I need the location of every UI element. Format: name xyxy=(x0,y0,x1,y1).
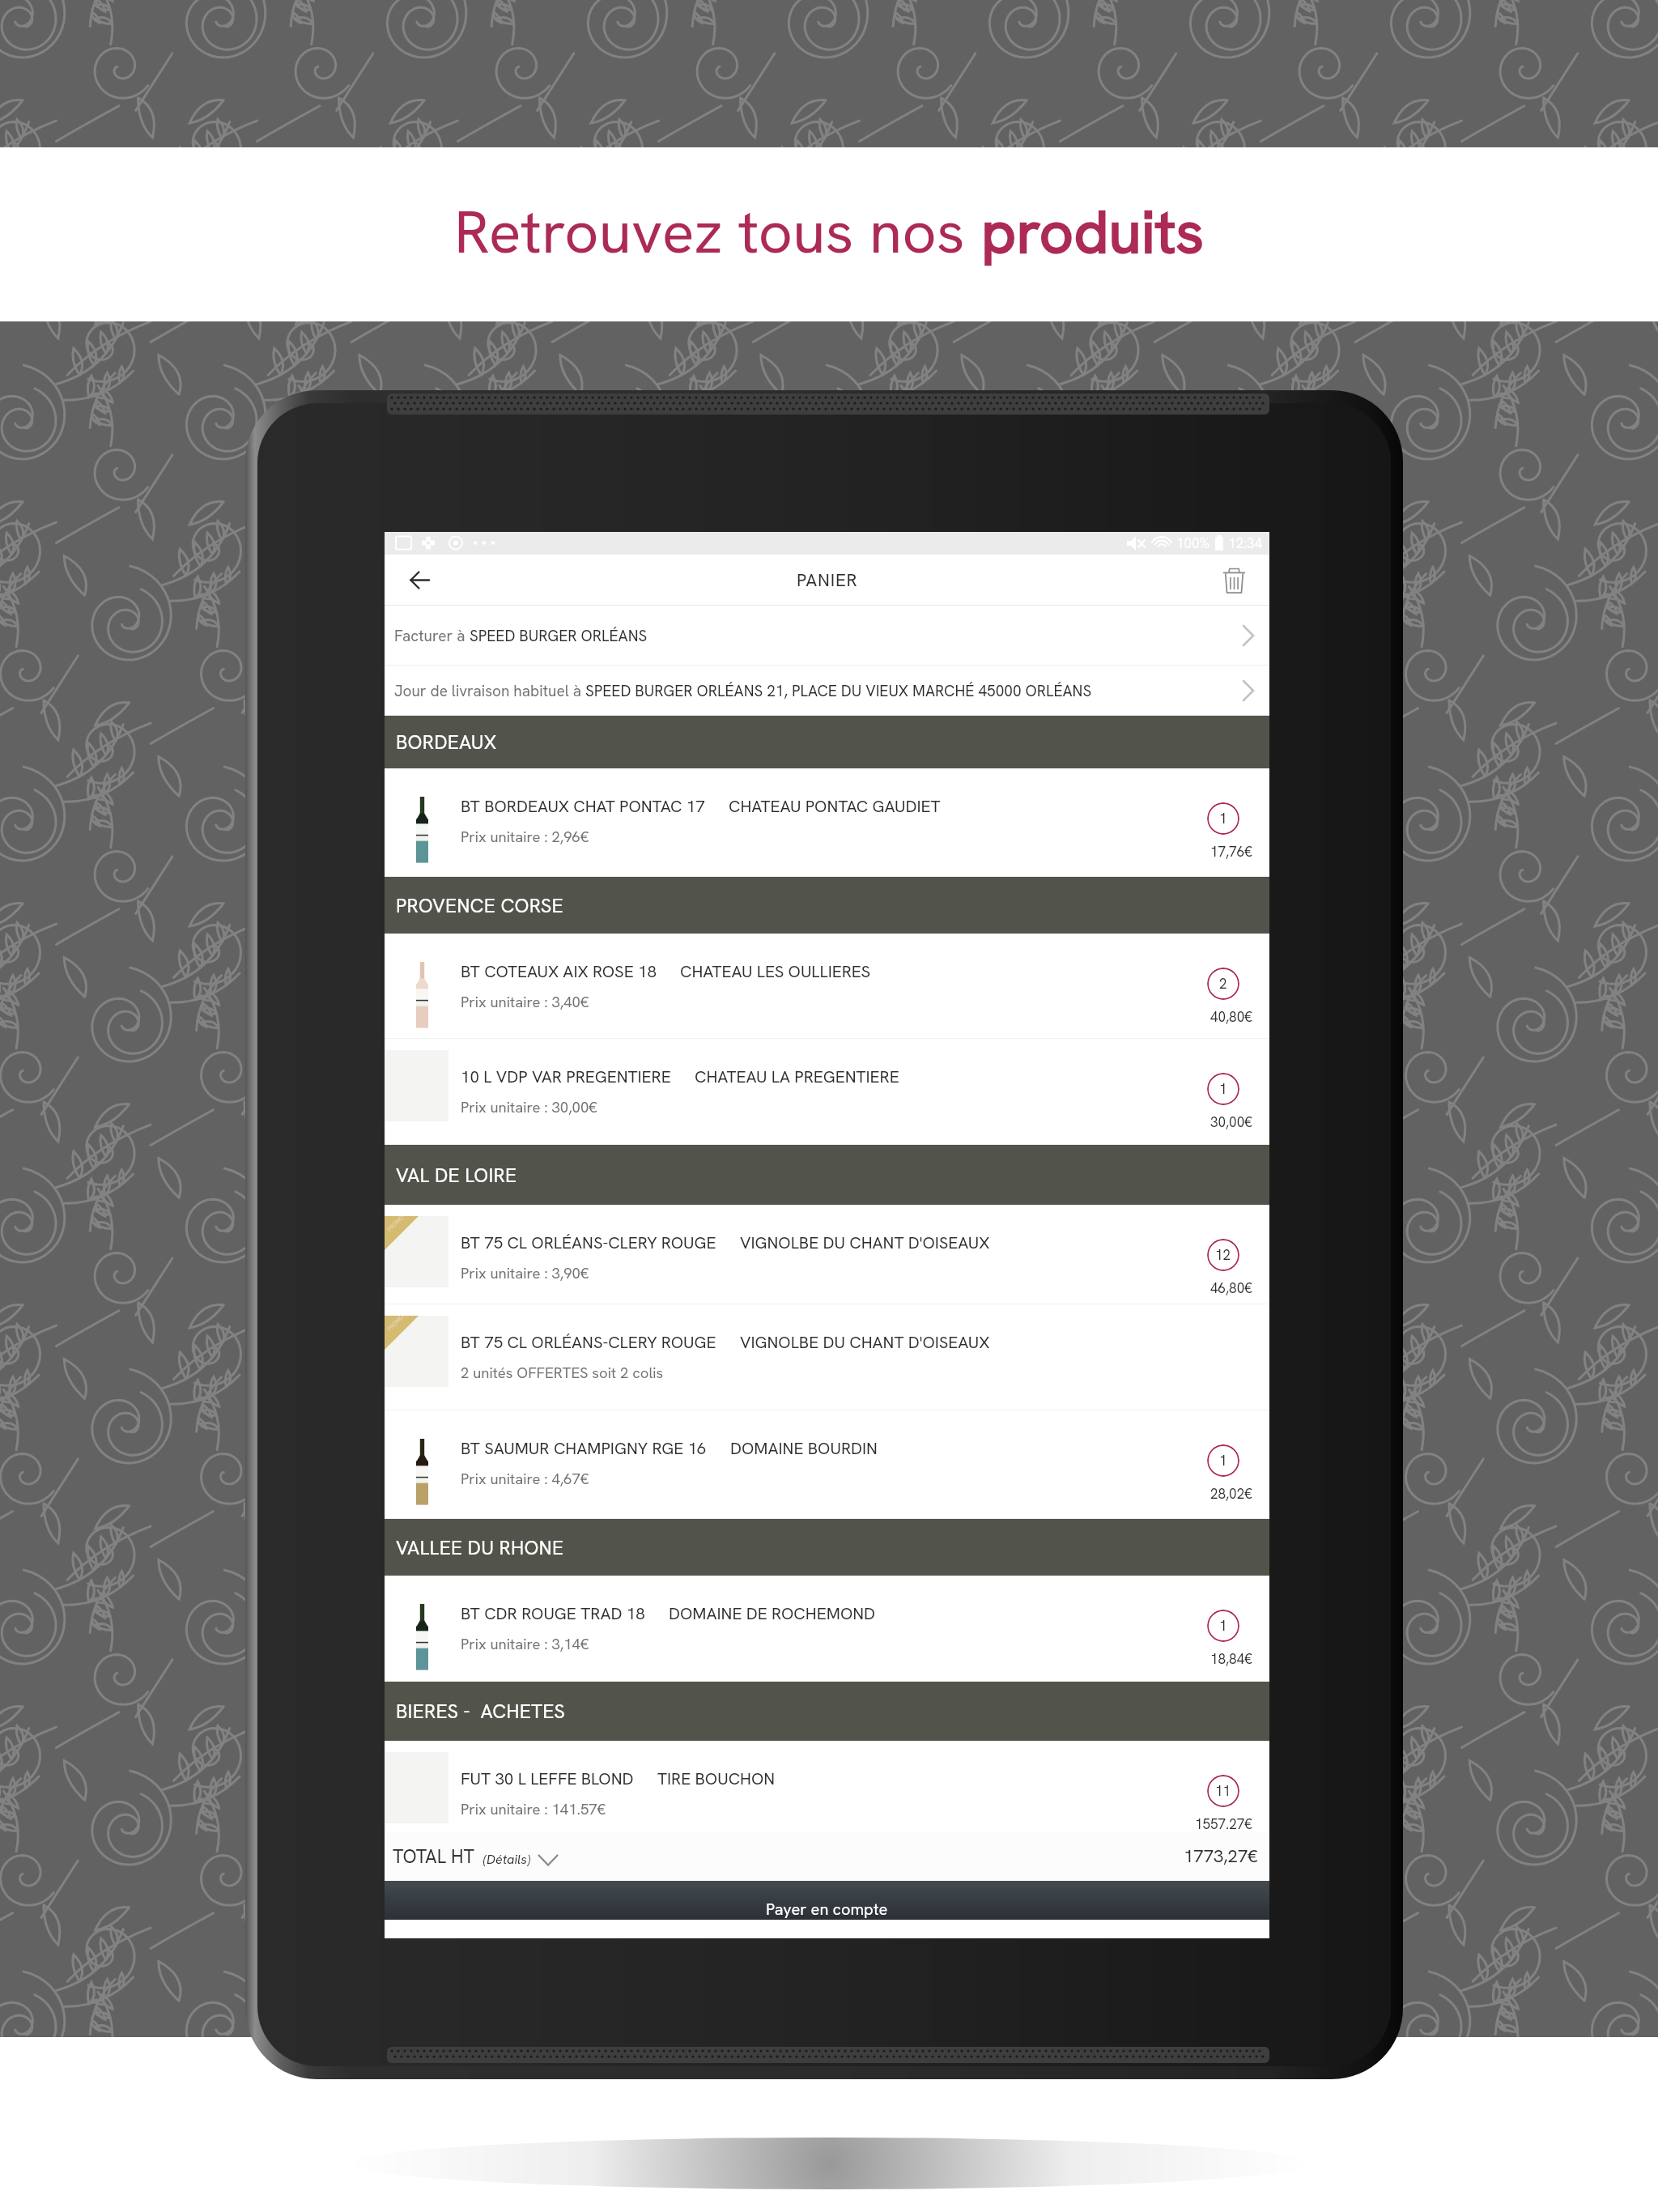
button[interactable]: PROMO xyxy=(385,1304,1269,1410)
staticText: Prix unitaire : 3,90€ xyxy=(461,1263,589,1283)
staticText: 12 xyxy=(1215,1246,1231,1264)
staticText: DOMAINE BOURDIN xyxy=(730,1437,878,1459)
staticText: BT SAUMUR CHAMPIGNY RGE 16 xyxy=(461,1437,707,1459)
staticText: 1 xyxy=(1219,1080,1227,1098)
staticText: Jour de livraison habituel à xyxy=(394,681,585,701)
staticText: 1773,27€ xyxy=(1184,1844,1258,1868)
staticText: BIERES - ACHETES xyxy=(396,1699,566,1724)
staticText: BT COTEAUX AIX ROSE 18 xyxy=(461,960,657,982)
button[interactable]: Vider le panier xyxy=(1209,555,1258,606)
staticText: 1 xyxy=(1219,1617,1227,1635)
button[interactable]: BT SAUMUR CHAMPIGNY RGE 16 xyxy=(385,1410,1269,1519)
button[interactable]: 11 xyxy=(1207,1775,1239,1807)
staticText: 18,84€ xyxy=(1210,1650,1252,1668)
button[interactable]: 12 xyxy=(1207,1239,1239,1271)
staticText: CHATEAU LES OULLIERES xyxy=(680,960,871,982)
button[interactable]: BT BORDEAUX CHAT PONTAC 17 xyxy=(385,768,1269,877)
staticText: CHATEAU LA PREGENTIERE xyxy=(695,1066,899,1087)
staticText: Payer en compte xyxy=(766,1899,888,1920)
button[interactable]: BT COTEAUX AIX ROSE 18 xyxy=(385,934,1269,1039)
staticText: 40,80€ xyxy=(1210,1008,1252,1026)
staticText: 1557.27€ xyxy=(1195,1815,1252,1833)
staticText: produits xyxy=(981,193,1205,270)
staticText: 2 unités OFFERTES soit 2 colis xyxy=(461,1363,664,1382)
button[interactable]: FUT 30 L LEFFE BLOND xyxy=(385,1741,1269,1850)
staticText: SPEED BURGER ORLÉANS 21, PLACE DU VIEUX … xyxy=(585,681,1092,701)
button[interactable]: BT CDR ROUGE TRAD 18 xyxy=(385,1576,1269,1682)
button[interactable]: Retour xyxy=(389,555,450,606)
staticText: Prix unitaire : 30,00€ xyxy=(461,1097,597,1117)
staticText: PROVENCE CORSE xyxy=(396,893,563,918)
staticText: 1 xyxy=(1219,810,1227,827)
staticText: Prix unitaire : 141.57€ xyxy=(461,1799,606,1819)
staticText: 12:34 xyxy=(1228,534,1263,552)
staticText: Prix unitaire : 2,96€ xyxy=(461,827,589,846)
button[interactable]: 1 xyxy=(1207,1073,1239,1105)
button[interactable]: 1 xyxy=(1207,802,1239,835)
staticText: Prix unitaire : 3,40€ xyxy=(461,992,589,1011)
button[interactable]: TOTAL HT xyxy=(385,1831,1269,1881)
staticText: BT 75 CL ORLÉANS-CLERY ROUGE xyxy=(461,1231,716,1253)
staticText: TIRE BOUCHON xyxy=(657,1767,776,1789)
button[interactable]: 2 xyxy=(1207,968,1239,1000)
button[interactable]: Jour de livraison habituel à xyxy=(385,666,1269,716)
staticText: Facturer à xyxy=(394,626,470,646)
staticText: PROMO xyxy=(386,1213,405,1233)
button[interactable]: 1 xyxy=(1207,1444,1239,1477)
button[interactable]: 1 xyxy=(1207,1610,1239,1642)
button[interactable]: Facturer à xyxy=(385,606,1269,666)
staticText: 11 xyxy=(1215,1782,1231,1800)
staticText: 28,02€ xyxy=(1210,1485,1252,1503)
staticText: VAL DE LOIRE xyxy=(396,1163,517,1188)
staticText: TOTAL HT xyxy=(393,1844,475,1869)
staticText: Prix unitaire : 4,67€ xyxy=(461,1469,589,1488)
staticText: VIGNOLBE DU CHANT D'OISEAUX xyxy=(740,1331,990,1353)
staticText: PANIER xyxy=(797,568,858,592)
staticText: 30,00€ xyxy=(1210,1113,1252,1131)
staticText: 10 L VDP VAR PREGENTIERE xyxy=(461,1066,671,1087)
button[interactable]: Payer en compte xyxy=(385,1881,1269,1920)
button[interactable]: PROMO xyxy=(385,1205,1269,1304)
staticText: CHATEAU PONTAC GAUDIET xyxy=(729,795,941,817)
staticText: 17,76€ xyxy=(1210,843,1252,861)
staticText: SPEED BURGER ORLÉANS xyxy=(470,626,648,646)
staticText: FUT 30 L LEFFE BLOND xyxy=(461,1767,634,1789)
staticText: BT BORDEAUX CHAT PONTAC 17 xyxy=(461,795,705,817)
staticText: PROMO xyxy=(386,1313,405,1332)
staticText: (Détails) xyxy=(483,1851,531,1868)
staticText: VIGNOLBE DU CHANT D'OISEAUX xyxy=(740,1231,990,1253)
staticText: BORDEAUX xyxy=(396,730,497,755)
staticText: 46,80€ xyxy=(1210,1279,1252,1297)
staticText: VALLEE DU RHONE xyxy=(396,1535,564,1560)
staticText: BT 75 CL ORLÉANS-CLERY ROUGE xyxy=(461,1331,716,1353)
staticText: Prix unitaire : 3,14€ xyxy=(461,1634,589,1653)
staticText: Retrouvez tous nos xyxy=(454,193,981,270)
staticText: 1 xyxy=(1219,1452,1227,1470)
staticText: DOMAINE DE ROCHEMOND xyxy=(669,1602,876,1624)
staticText: 100% xyxy=(1176,534,1210,552)
button[interactable]: 10 L VDP VAR PREGENTIERE xyxy=(385,1039,1269,1145)
staticText: 2 xyxy=(1219,975,1227,993)
staticText: BT CDR ROUGE TRAD 18 xyxy=(461,1602,645,1624)
